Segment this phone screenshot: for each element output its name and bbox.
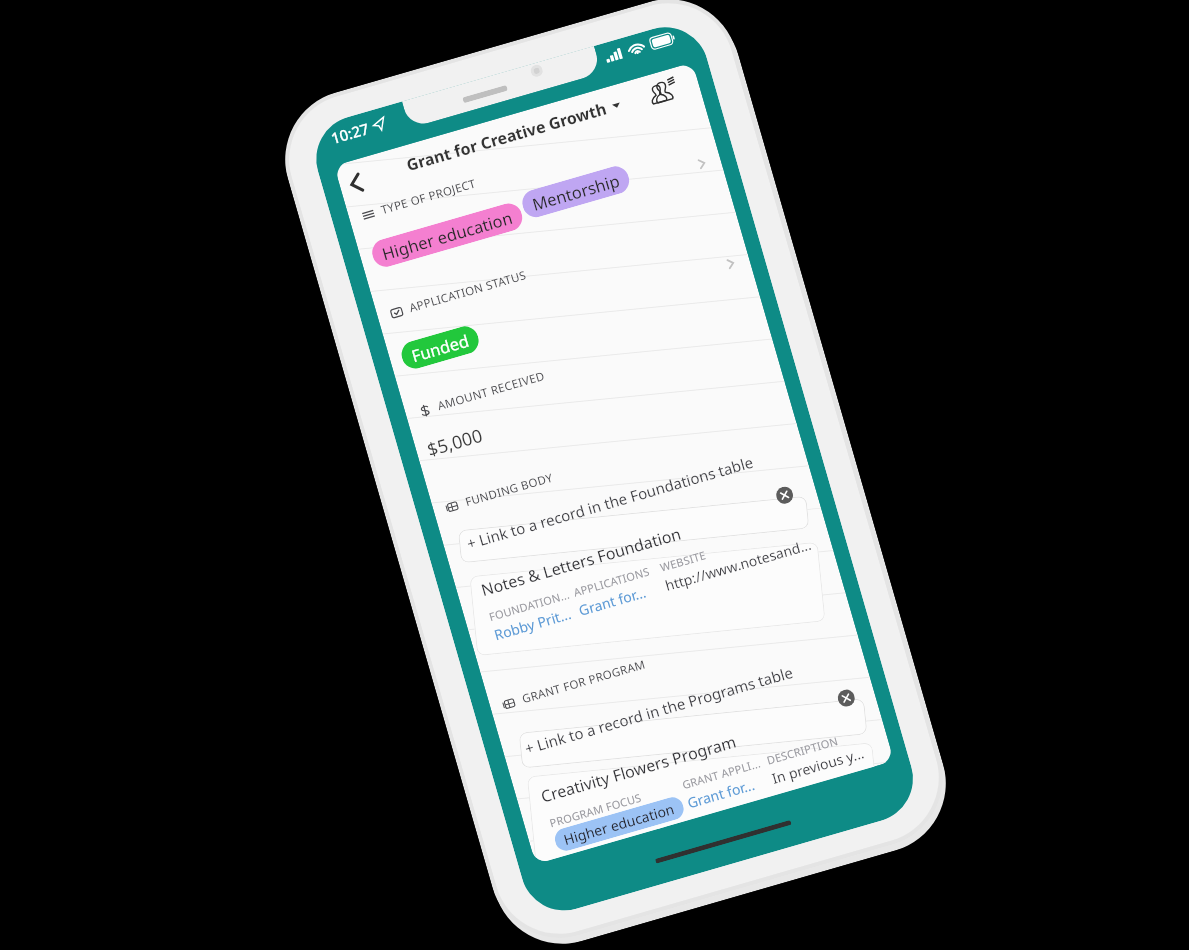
button[interactable]: Back	[337, 165, 374, 202]
button[interactable]: + Link to a record in the Programs table	[522, 662, 795, 758]
staticText: 10:27	[329, 118, 372, 148]
button[interactable]	[512, 638, 874, 829]
button[interactable]: Higher education	[369, 200, 526, 270]
button[interactable]: APPLICATION STATUS	[388, 267, 528, 322]
staticText: Grant for...	[685, 775, 757, 812]
staticText: GRANT FOR PROGRAM	[520, 656, 648, 707]
button[interactable]: Creativity Flowers Program	[527, 681, 887, 860]
staticText: PROGRAM FOCUS	[548, 790, 643, 830]
button[interactable]: Mentorship	[519, 163, 632, 220]
button[interactable]: Remove link	[774, 485, 795, 506]
staticText: Grant for...	[576, 582, 648, 620]
button[interactable]: Open	[722, 255, 739, 272]
staticText: Higher education	[379, 206, 515, 264]
button[interactable]: + Link to a record in the Foundations ta…	[464, 452, 755, 553]
staticText: Creativity Flowers Program	[538, 730, 739, 808]
button[interactable]: GRANT FOR PROGRAM	[501, 656, 648, 713]
button[interactable]	[512, 682, 879, 864]
staticText: DESCRIPTION	[765, 733, 840, 768]
button[interactable]	[452, 435, 815, 624]
button[interactable]: Grant for Creative Growth	[404, 93, 623, 176]
button[interactable]: Remove link	[836, 688, 857, 709]
staticText: APPLICATIONS	[572, 563, 652, 600]
button[interactable]: FUNDING BODY	[444, 470, 555, 516]
staticText: Robby Prit...	[492, 604, 574, 644]
staticText: Mentorship	[529, 169, 622, 215]
button[interactable]: Collaborators	[642, 69, 684, 112]
button[interactable]: Notes & Letters Foundation	[468, 474, 829, 658]
staticText: APPLICATION STATUS	[407, 267, 528, 316]
staticText: Higher education	[561, 799, 677, 849]
staticText: Grant for Creative Growth	[404, 98, 609, 176]
button[interactable]: AMOUNT RECEIVED	[416, 368, 547, 420]
staticText: GRANT APPLI...	[680, 755, 762, 792]
staticText: FUNDING BODY	[463, 470, 555, 510]
button[interactable]: TYPE OF PROJECT	[360, 175, 478, 224]
button[interactable]	[455, 481, 839, 717]
staticText: AMOUNT RECEIVED	[436, 368, 547, 414]
staticText: Funded	[409, 329, 471, 366]
staticText: TYPE OF PROJECT	[379, 175, 478, 218]
staticText: $5,000	[424, 423, 486, 462]
staticText: http://www.notesand...	[663, 535, 813, 595]
button[interactable]: Open	[693, 155, 710, 172]
staticText: WEBSITE	[658, 547, 707, 575]
staticText: In previous y...	[770, 743, 866, 788]
staticText: Notes & Letters Foundation	[479, 522, 684, 601]
staticText: FOUNDATION...	[487, 586, 572, 624]
button[interactable]: Funded	[398, 323, 482, 372]
